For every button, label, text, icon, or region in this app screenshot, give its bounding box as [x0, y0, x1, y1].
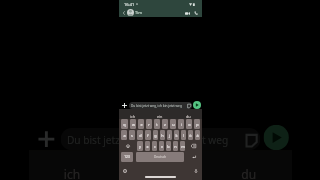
button[interactable]: ich [119, 109, 146, 119]
button[interactable]: ich [29, 150, 114, 180]
staticText: s [131, 133, 133, 138]
button[interactable]: Attach [32, 125, 57, 150]
button[interactable]: i [178, 119, 184, 129]
button[interactable]: h [160, 130, 165, 140]
button[interactable]: ein [114, 150, 203, 180]
staticText: v [161, 144, 163, 149]
button[interactable]: Send [193, 101, 201, 109]
staticText: y [139, 144, 141, 149]
staticText: Deutsch [154, 155, 167, 159]
staticText: i [181, 122, 182, 127]
button[interactable]: x [145, 141, 150, 151]
button[interactable]: d [137, 130, 143, 140]
button[interactable]: Du bist jetzt weg, ich bin jetzt weg [61, 128, 260, 150]
button[interactable]: Backspace [187, 141, 200, 151]
button[interactable]: Voice input [193, 168, 199, 174]
button[interactable]: n [173, 141, 178, 151]
button[interactable]: Send [263, 125, 289, 150]
staticText: x [146, 144, 149, 149]
staticText: g [154, 133, 157, 138]
staticText: ein [149, 166, 168, 180]
button[interactable]: ein [146, 109, 174, 119]
staticText: q [123, 122, 126, 127]
staticText: 123 [124, 155, 130, 159]
button[interactable]: Du bist jetzt weg, ich bin jetzt weg [129, 102, 192, 109]
button[interactable]: Video call [183, 9, 191, 17]
staticText: d [139, 133, 142, 138]
button[interactable]: k [174, 130, 179, 140]
button[interactable]: y [137, 141, 143, 151]
button[interactable]: v [159, 141, 164, 151]
button[interactable]: Emoji [122, 168, 128, 174]
staticText: f [147, 133, 149, 138]
staticText: z [164, 122, 166, 127]
button[interactable]: Deutsch [136, 152, 184, 162]
staticText: ä [196, 133, 199, 138]
staticText: du [241, 166, 257, 180]
staticText: c [154, 144, 156, 149]
staticText: a [123, 133, 126, 138]
button[interactable]: j [167, 130, 172, 140]
staticText: o [188, 122, 191, 127]
staticText: r [148, 122, 150, 127]
button[interactable]: q [121, 119, 128, 129]
button[interactable]: Shift [121, 141, 135, 151]
button[interactable]: 123 [121, 152, 133, 162]
staticText: Tim [135, 10, 143, 15]
staticText: j [169, 133, 170, 138]
button[interactable]: Back [120, 9, 127, 16]
button[interactable]: c [152, 141, 157, 151]
button[interactable]: s [129, 130, 135, 140]
staticText: k [175, 133, 178, 138]
staticText: ein [157, 114, 163, 119]
button[interactable]: du [174, 109, 202, 119]
staticText: Du bist jetzt weg, ich bin jetzt weg [67, 134, 229, 147]
staticText: b [167, 144, 170, 149]
staticText: ich [64, 166, 83, 180]
button[interactable]: ä [195, 130, 200, 140]
button[interactable]: z [162, 119, 168, 129]
button[interactable]: a [121, 130, 127, 140]
staticText: u [172, 122, 175, 127]
button[interactable]: w [130, 119, 136, 129]
button[interactable]: Voice call [192, 9, 200, 17]
staticText: du [186, 114, 191, 119]
button[interactable]: m [180, 141, 185, 151]
button[interactable]: Attach [120, 101, 128, 109]
staticText: ö [189, 133, 192, 138]
staticText: l [183, 133, 184, 138]
staticText: 16:41 [124, 2, 135, 7]
button[interactable]: r [146, 119, 152, 129]
staticText: n [174, 144, 177, 149]
staticText: h [161, 133, 164, 138]
staticText: e [140, 122, 143, 127]
staticText: w [132, 122, 135, 127]
button[interactable]: Enter [187, 152, 200, 162]
staticText: ich [130, 114, 136, 119]
button[interactable]: du [203, 150, 292, 180]
button[interactable]: u [170, 119, 176, 129]
button[interactable]: g [153, 130, 158, 140]
button[interactable]: o [186, 119, 192, 129]
button[interactable]: t [154, 119, 160, 129]
staticText: p [196, 122, 199, 127]
button[interactable]: e [138, 119, 144, 129]
button[interactable]: p [194, 119, 200, 129]
staticText: m [181, 144, 185, 149]
button[interactable]: b [166, 141, 171, 151]
staticText: Du bist jetzt weg, ich bin jetzt weg [131, 104, 182, 108]
staticText: t [156, 122, 158, 127]
button[interactable]: l [181, 130, 186, 140]
button[interactable]: f [145, 130, 151, 140]
button[interactable]: ö [188, 130, 193, 140]
